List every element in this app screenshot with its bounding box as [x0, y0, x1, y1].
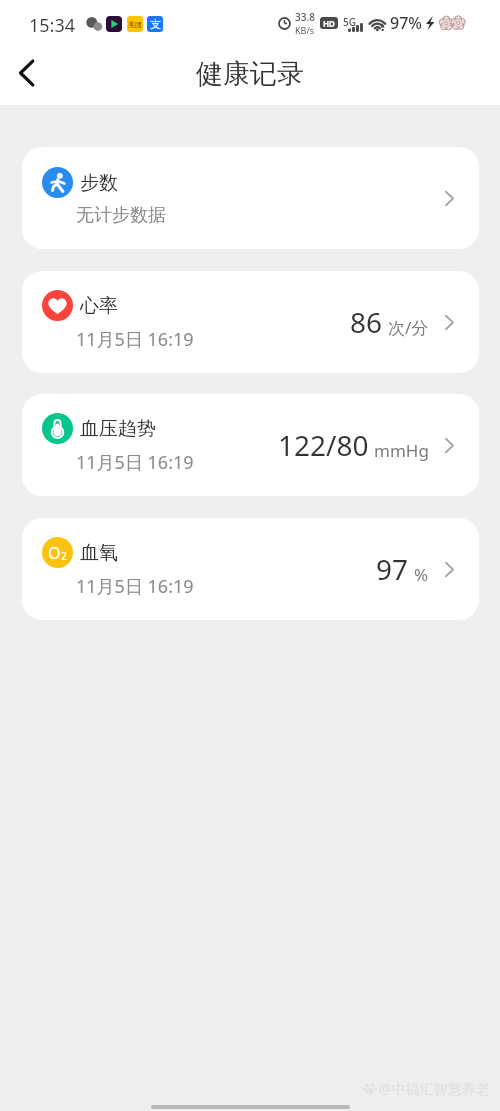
button[interactable]: 返回 — [2, 49, 50, 97]
staticText: 血压趋势 — [80, 417, 156, 441]
staticText: 11月5日 16:19 — [76, 574, 194, 599]
button[interactable]: 心率 — [22, 271, 479, 373]
staticText: 11月5日 16:19 — [76, 450, 194, 475]
staticText: mmHg — [374, 439, 429, 462]
staticText: 支 — [150, 17, 161, 31]
staticText: 心率 — [80, 294, 118, 318]
staticText: KB/s — [295, 24, 315, 36]
button[interactable]: 步数 — [22, 147, 479, 249]
staticText: 步数 — [80, 171, 118, 195]
staticText: 97 — [376, 550, 409, 588]
staticText: @中福汇智慧养老 — [379, 1079, 490, 1098]
staticText: 美团 — [128, 20, 142, 29]
staticText: 86 — [350, 303, 383, 341]
staticText: 97% — [390, 12, 422, 34]
staticText: O — [48, 542, 61, 564]
staticText: 122/80 — [278, 426, 369, 464]
staticText: 11月5日 16:19 — [76, 327, 194, 352]
staticText: 5G — [343, 15, 356, 29]
staticText: HD — [323, 18, 335, 29]
staticText: 次/分 — [388, 316, 429, 339]
staticText: 无计步数据 — [76, 204, 166, 227]
staticText: % — [414, 563, 429, 586]
button[interactable]: 血压趋势 — [22, 394, 479, 496]
button[interactable]: O — [22, 518, 479, 620]
staticText: 15:34 — [29, 13, 76, 38]
staticText: 血氧 — [80, 541, 118, 565]
staticText: 健康记录 — [196, 57, 304, 91]
staticText: 2 — [61, 549, 67, 563]
staticText: 33.8 — [295, 10, 315, 24]
